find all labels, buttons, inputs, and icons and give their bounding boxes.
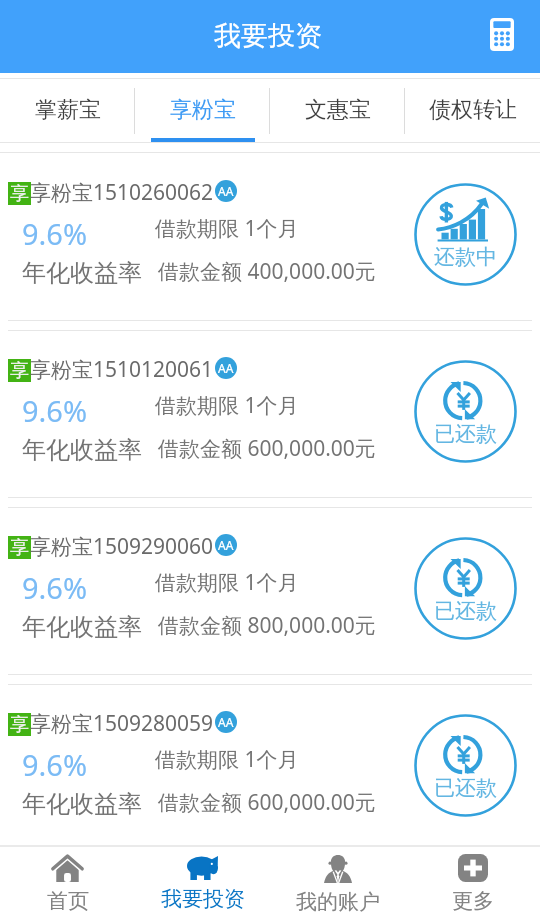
staticText: 享粉宝1510260062 <box>30 178 214 207</box>
staticText: 享 <box>10 359 29 382</box>
staticText: 享 <box>10 536 29 559</box>
staticText: 更多 <box>452 888 494 914</box>
staticText: 享粉宝1509290060 <box>30 532 214 561</box>
staticText: 享粉宝1509280059 <box>30 709 214 738</box>
staticText: 借款金额 400,000.00元 <box>158 257 376 286</box>
button[interactable]: 享 <box>0 330 540 507</box>
staticText: 掌薪宝 <box>35 96 101 124</box>
staticText: 借款金额 800,000.00元 <box>158 611 376 640</box>
staticText: 借款金额 600,000.00元 <box>158 434 376 463</box>
button[interactable]: 更多 <box>405 847 540 920</box>
button[interactable]: Calculator <box>478 8 526 60</box>
staticText: AA <box>218 714 234 730</box>
staticText: 享 <box>10 182 29 205</box>
button[interactable]: 文惠宝 <box>270 79 405 143</box>
staticText: 借款期限 1个月 <box>155 214 299 243</box>
staticText: 9.6% <box>22 568 88 607</box>
staticText: 享粉宝1510120061 <box>30 355 214 384</box>
button[interactable]: 我要投资 <box>135 847 270 920</box>
staticText: 我要投资 <box>214 19 322 53</box>
staticText: 首页 <box>47 888 89 914</box>
staticText: 已还款 <box>434 598 497 624</box>
staticText: 9.6% <box>22 745 88 784</box>
staticText: 我要投资 <box>161 886 245 912</box>
staticText: 享 <box>10 713 29 736</box>
staticText: 年化收益率 <box>22 789 142 819</box>
button[interactable]: 债权转让 <box>405 79 540 143</box>
button[interactable]: 享粉宝 <box>135 79 270 143</box>
button[interactable]: 享 <box>0 684 540 861</box>
staticText: 文惠宝 <box>305 96 371 124</box>
staticText: 年化收益率 <box>22 258 142 288</box>
staticText: 享粉宝 <box>170 96 236 124</box>
staticText: AA <box>218 183 234 199</box>
staticText: 借款期限 1个月 <box>155 568 299 597</box>
staticText: 9.6% <box>22 214 88 253</box>
button[interactable]: 首页 <box>0 847 135 920</box>
button[interactable]: 我的账户 <box>270 847 405 920</box>
staticText: 年化收益率 <box>22 435 142 465</box>
staticText: 借款期限 1个月 <box>155 391 299 420</box>
staticText: 借款金额 600,000.00元 <box>158 788 376 817</box>
button[interactable]: 享 <box>0 507 540 684</box>
staticText: 已还款 <box>434 421 497 447</box>
staticText: 年化收益率 <box>22 612 142 642</box>
staticText: AA <box>218 537 234 553</box>
staticText: 债权转让 <box>429 96 517 124</box>
staticText: 9.6% <box>22 391 88 430</box>
button[interactable]: 掌薪宝 <box>0 79 135 143</box>
staticText: 借款期限 1个月 <box>155 745 299 774</box>
staticText: AA <box>218 360 234 376</box>
staticText: 还款中 <box>434 244 497 270</box>
staticText: 我的账户 <box>296 889 380 915</box>
staticText: 已还款 <box>434 775 497 801</box>
button[interactable]: 享 <box>0 153 540 330</box>
